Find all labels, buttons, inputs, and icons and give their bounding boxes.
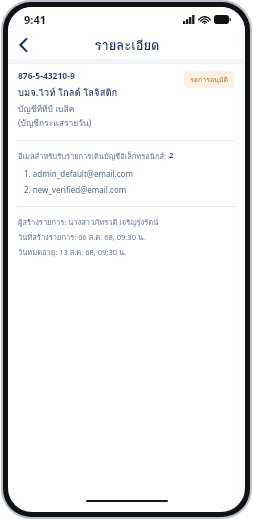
staticText: 876-5-43210-9	[18, 70, 75, 82]
button[interactable]: Back	[8, 31, 38, 59]
staticText: (บัญชีกระแสรายวัน)	[18, 116, 92, 130]
staticText: 2	[169, 150, 174, 160]
staticText: บมจ.ไวท์ โกลด์ โลจิสติก	[18, 85, 118, 100]
staticText: 9:41	[24, 12, 46, 27]
staticText: 1. admin_default@email.com	[24, 168, 133, 179]
staticText: 2. new_verified@email.com	[24, 184, 127, 195]
button[interactable]: รอการอนุมัติ	[184, 71, 235, 88]
staticText: บัญชีทีทีบี เบสิค	[18, 102, 75, 116]
staticText: อีเมลสำหรับรับรายการเดินบัญชีอิเล็กทรอนิ…	[18, 150, 169, 162]
staticText: รอการอนุมัติ	[190, 74, 229, 85]
staticText: รายละเอียด	[94, 35, 160, 56]
staticText: วันที่สร้างรายการ: 06 ส.ค. 68, 09:30 น.	[18, 231, 146, 243]
staticText: ผู้สร้างรายการ: นางสาวภัทรวดี เจริญรุ่งร…	[18, 216, 159, 228]
staticText: วันหมดอายุ: 13 ส.ค. 68, 09:30 น.	[18, 246, 127, 258]
